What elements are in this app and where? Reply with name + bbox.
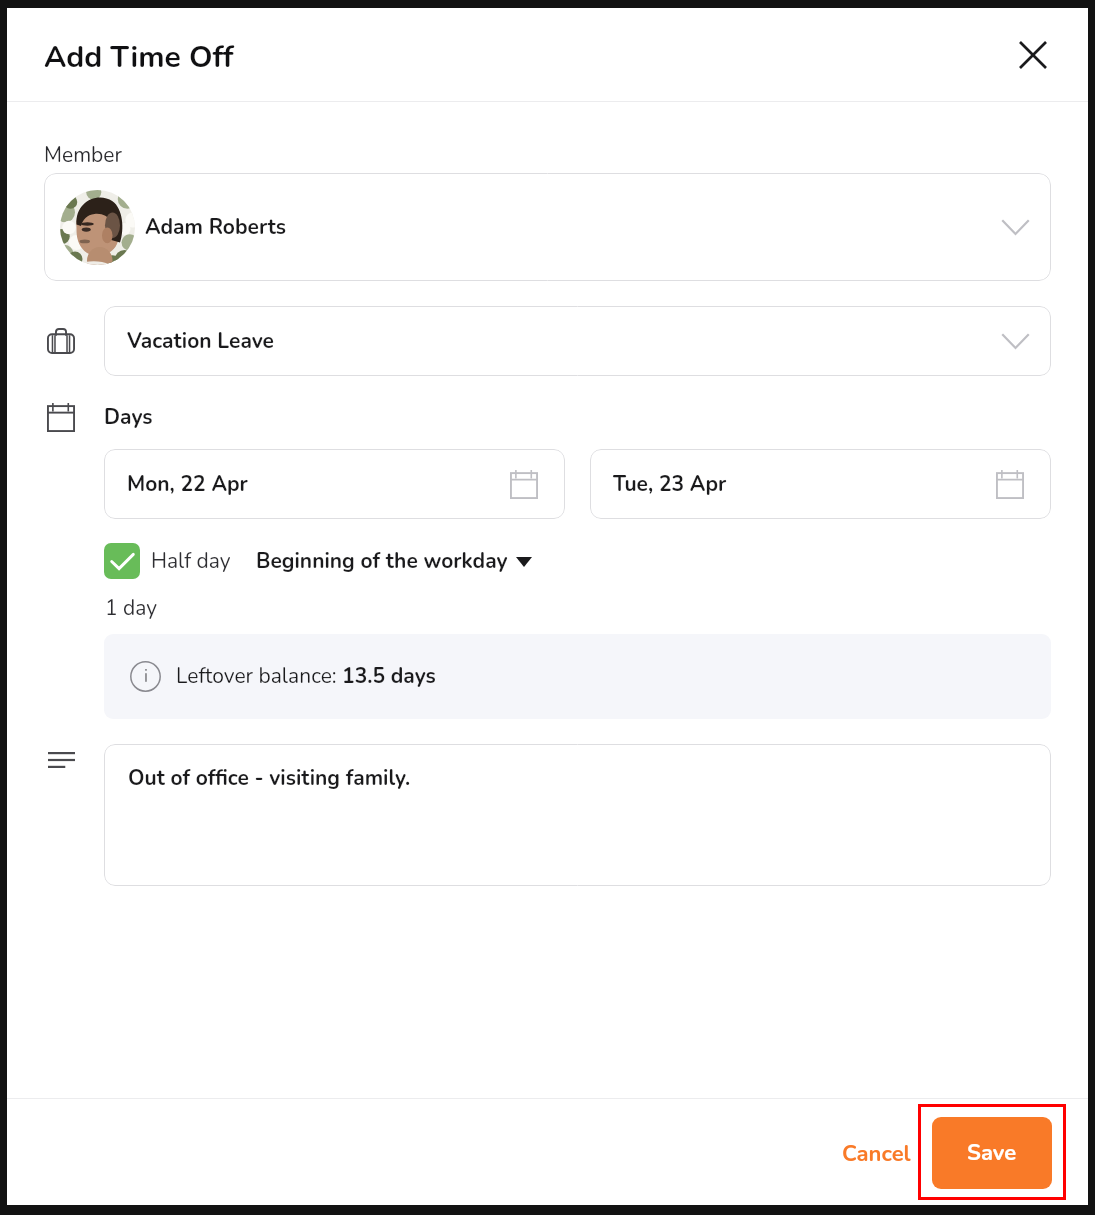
- button[interactable]: Out of office - visiting family.: [104, 744, 1051, 886]
- staticText: Member: [44, 141, 123, 170]
- button[interactable]: Tue, 23 Apr: [590, 449, 1051, 519]
- staticText: Half day: [151, 547, 231, 576]
- staticText: Out of office - visiting family.: [128, 764, 411, 793]
- staticText: Add Time Off: [44, 37, 234, 78]
- staticText: Tue, 23 Apr: [613, 470, 727, 499]
- staticText: Save: [967, 1138, 1017, 1168]
- button[interactable]: Mon, 22 Apr: [104, 449, 565, 519]
- button[interactable]: Adam Roberts: [44, 173, 1051, 281]
- button[interactable]: Cancel: [829, 1124, 918, 1181]
- button[interactable]: Beginning of the workday: [256, 547, 532, 576]
- button[interactable]: Vacation Leave: [104, 306, 1051, 376]
- button[interactable]: Half day: [104, 543, 140, 579]
- staticText: i: [144, 665, 148, 688]
- staticText: Adam Roberts: [145, 213, 287, 242]
- staticText: Cancel: [842, 1139, 911, 1169]
- staticText: Days: [104, 403, 153, 432]
- button[interactable]: Close: [1010, 32, 1056, 78]
- staticText: Vacation Leave: [127, 327, 274, 356]
- staticText: 1 day: [105, 594, 158, 623]
- staticText: Beginning of the workday: [256, 547, 508, 576]
- staticText: Mon, 22 Apr: [127, 470, 248, 499]
- staticText: Leftover balance: 13.5 days: [176, 662, 436, 691]
- button[interactable]: Save: [932, 1117, 1052, 1189]
